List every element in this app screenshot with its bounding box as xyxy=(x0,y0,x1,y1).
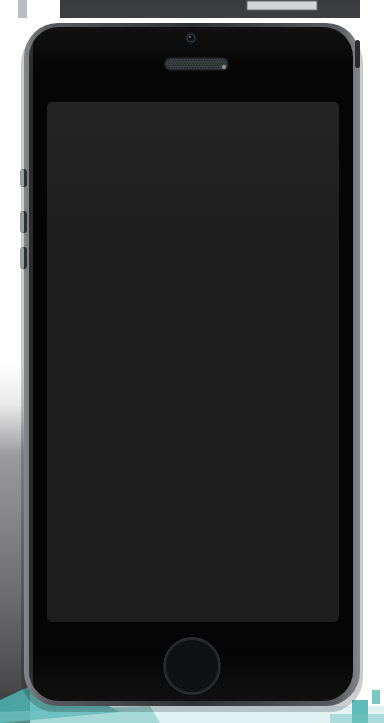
button[interactable]: Ring silent switch xyxy=(18,169,30,187)
button[interactable]: Power xyxy=(350,38,364,70)
button[interactable]: Volume down xyxy=(18,247,30,269)
button[interactable]: Volume up xyxy=(18,211,30,233)
button[interactable]: Home button xyxy=(164,638,220,694)
